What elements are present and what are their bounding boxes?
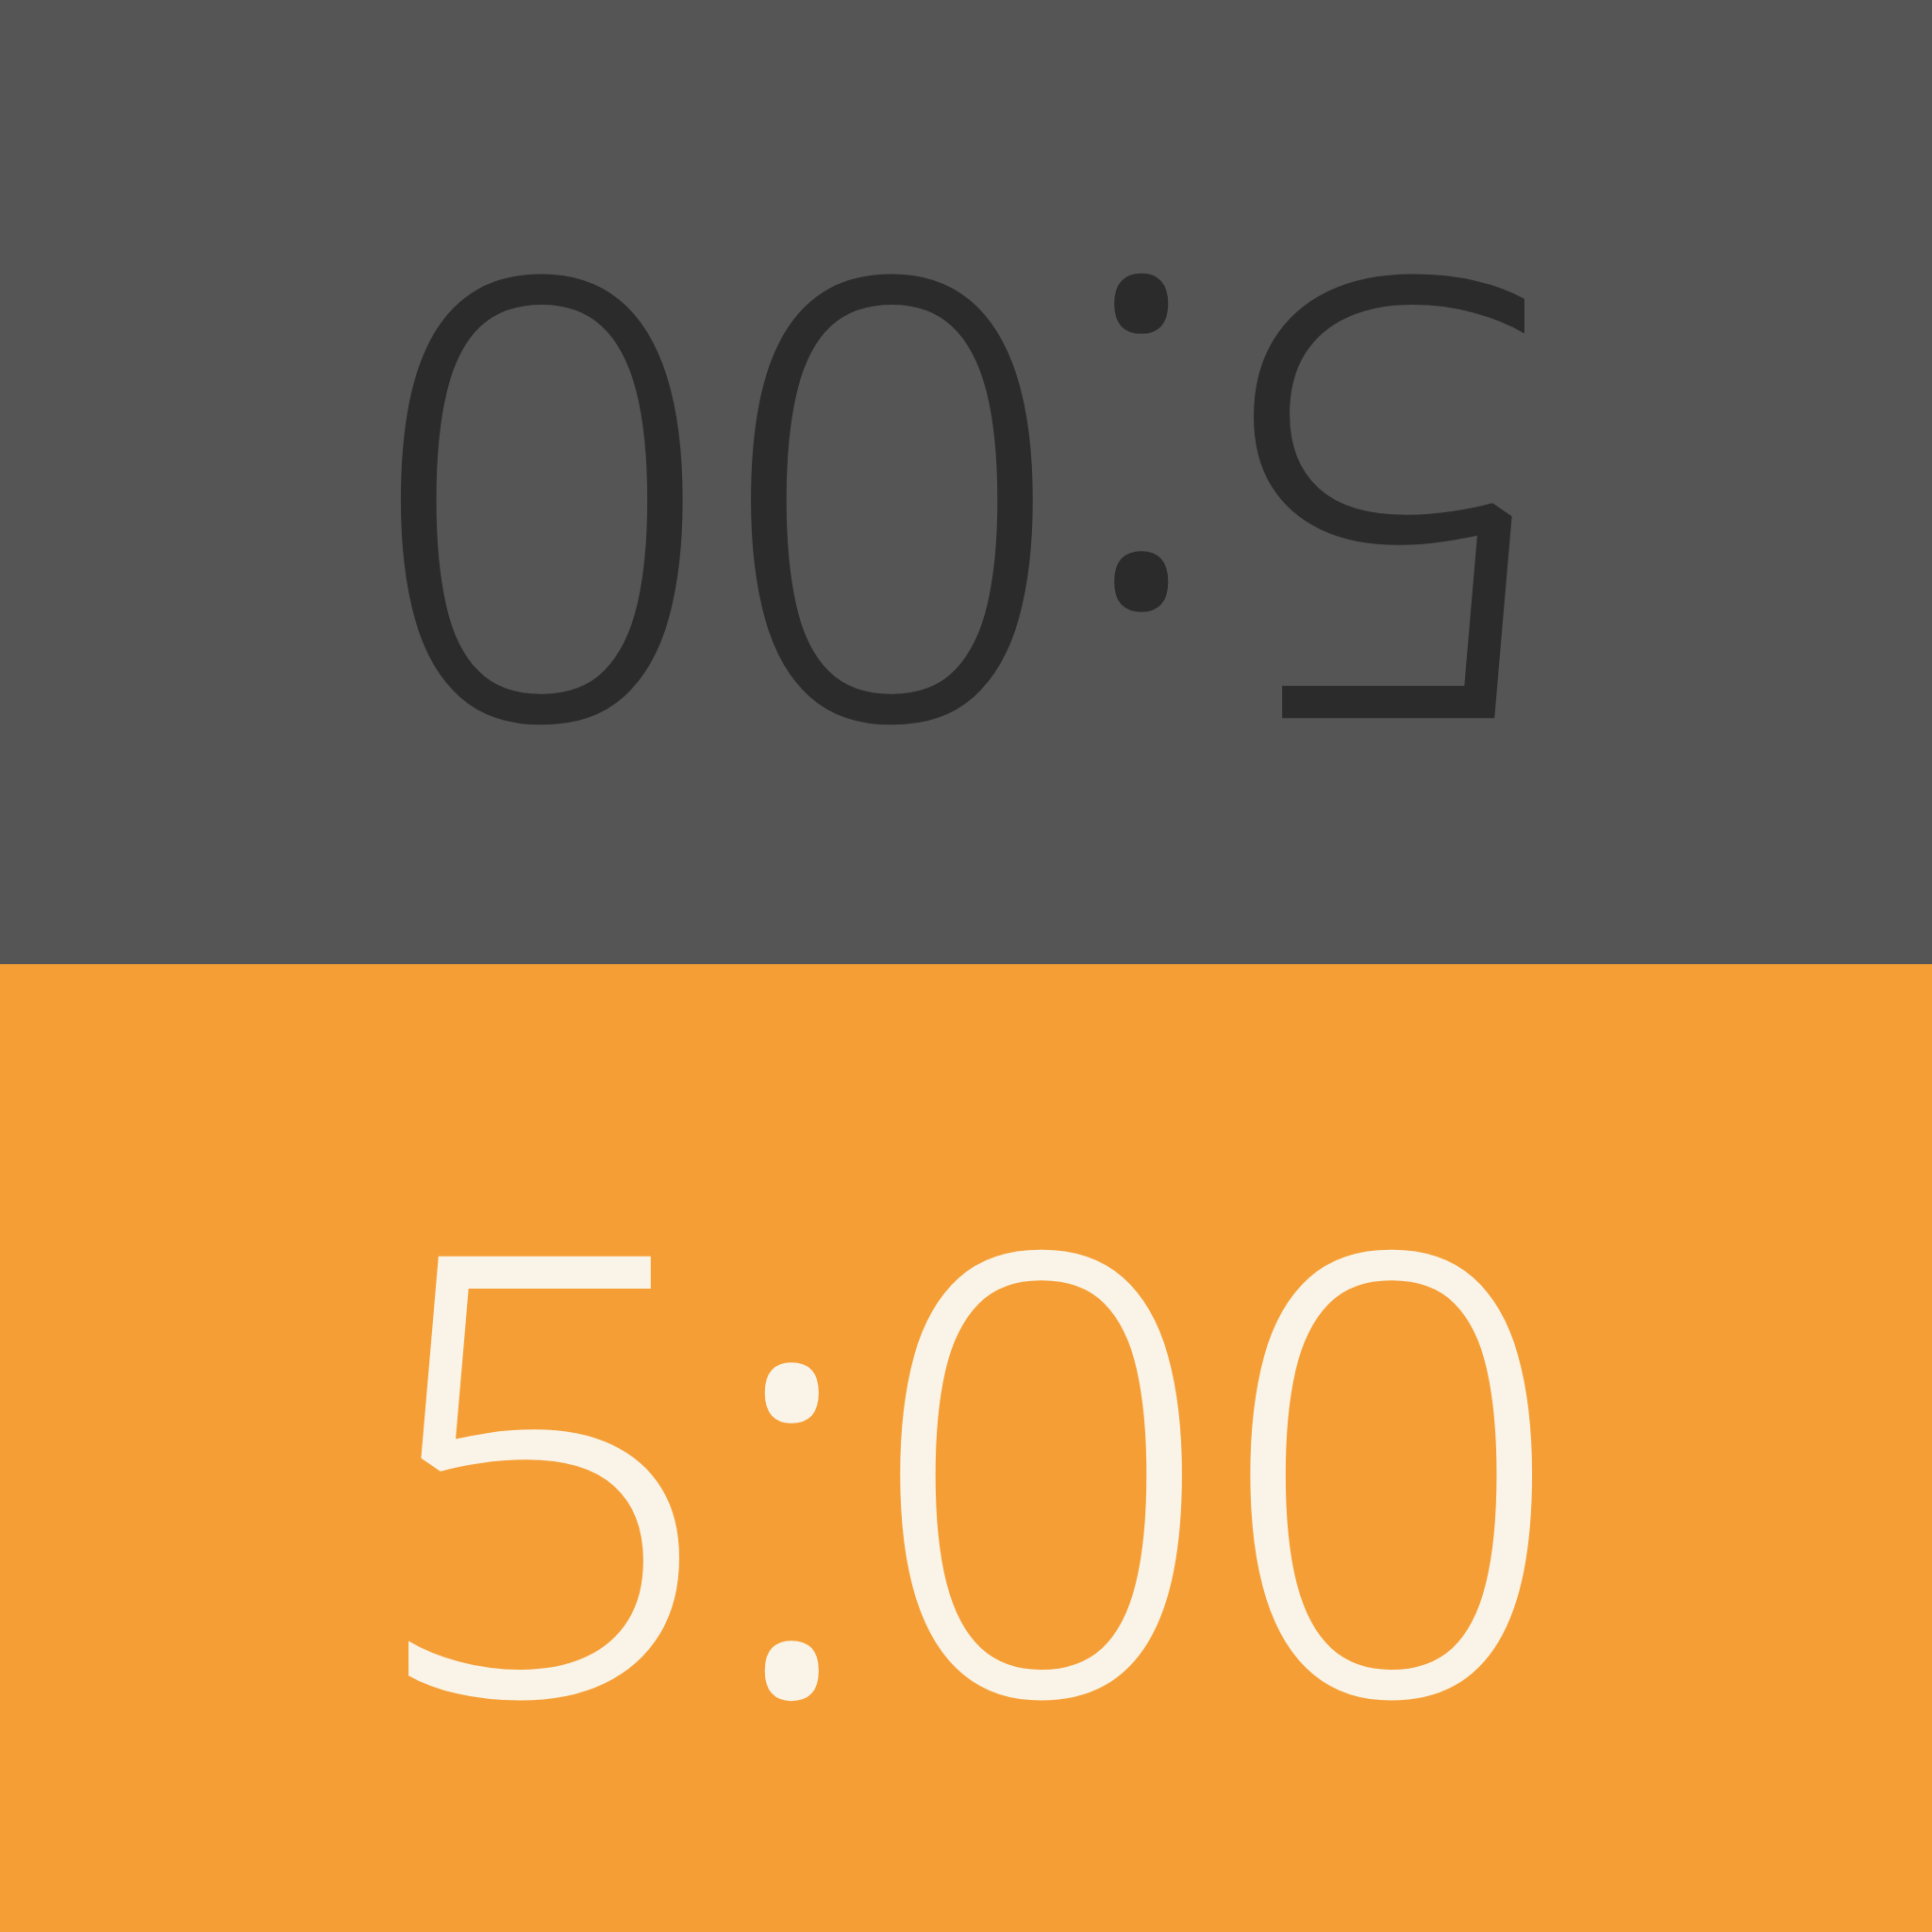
staticText: 5:00 (366, 101, 1567, 936)
button[interactable]: Your timer 5:00 (0, 964, 1932, 1932)
staticText: 5:00 (366, 1039, 1567, 1874)
button[interactable]: Opponent timer 5:00 (0, 0, 1932, 964)
